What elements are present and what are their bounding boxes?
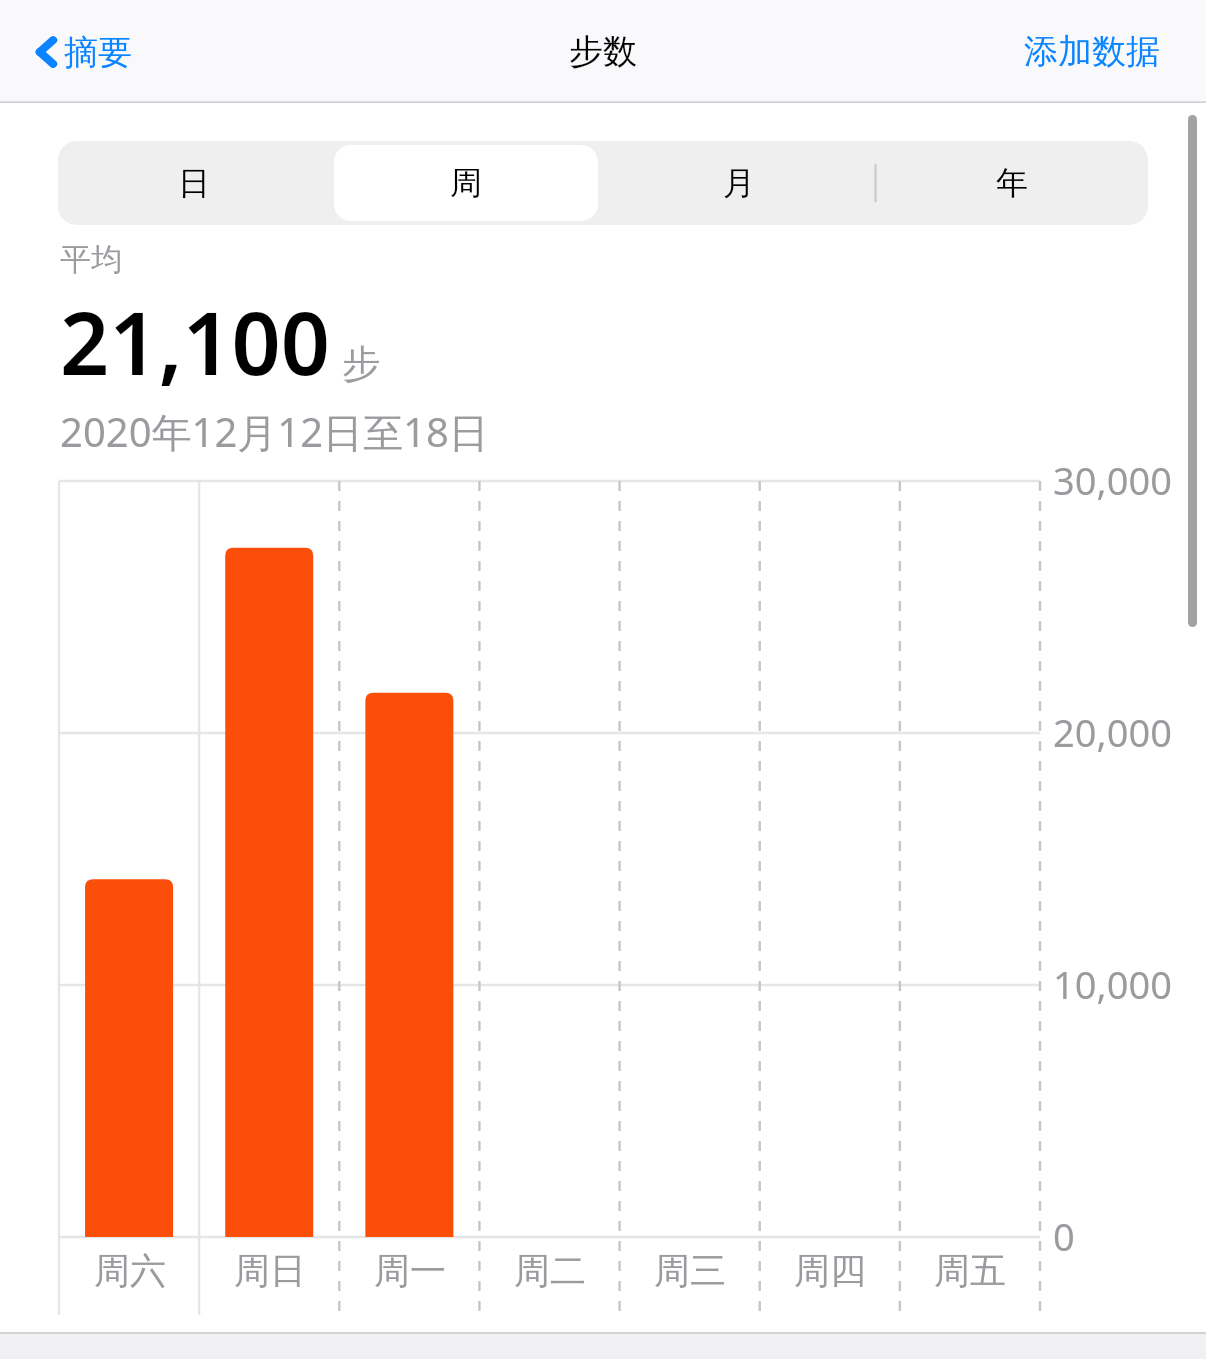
- staticText: 平均: [60, 240, 122, 279]
- staticText: 月: [723, 163, 755, 203]
- staticText: 周: [450, 163, 482, 203]
- staticText: 添加数据: [1024, 30, 1160, 73]
- staticText: 日: [178, 163, 210, 203]
- button[interactable]: 月: [606, 145, 871, 221]
- staticText: 周一: [374, 1248, 446, 1293]
- staticText: 摘要: [64, 31, 132, 74]
- staticText: 步数: [569, 30, 637, 73]
- button[interactable]: 返回 摘要: [26, 20, 140, 84]
- staticText: 周三: [654, 1248, 726, 1293]
- staticText: 周日: [234, 1248, 306, 1293]
- button[interactable]: 周: [334, 145, 598, 221]
- staticText: 周二: [514, 1248, 586, 1293]
- staticText: 30,000: [1053, 454, 1172, 506]
- button[interactable]: 添加数据: [1016, 20, 1168, 83]
- staticText: 周四: [794, 1248, 866, 1293]
- staticText: 步: [342, 340, 380, 388]
- button[interactable]: 日: [62, 145, 326, 221]
- staticText: 周六: [94, 1248, 166, 1293]
- staticText: 2020年12月12日至18日: [60, 404, 489, 459]
- button[interactable]: 年: [879, 145, 1144, 221]
- staticText: 10,000: [1053, 958, 1172, 1010]
- staticText: 年: [996, 163, 1028, 203]
- staticText: 周五: [934, 1248, 1006, 1293]
- staticText: 21,100: [60, 283, 330, 400]
- staticText: 20,000: [1053, 706, 1172, 758]
- staticText: 0: [1053, 1210, 1075, 1262]
